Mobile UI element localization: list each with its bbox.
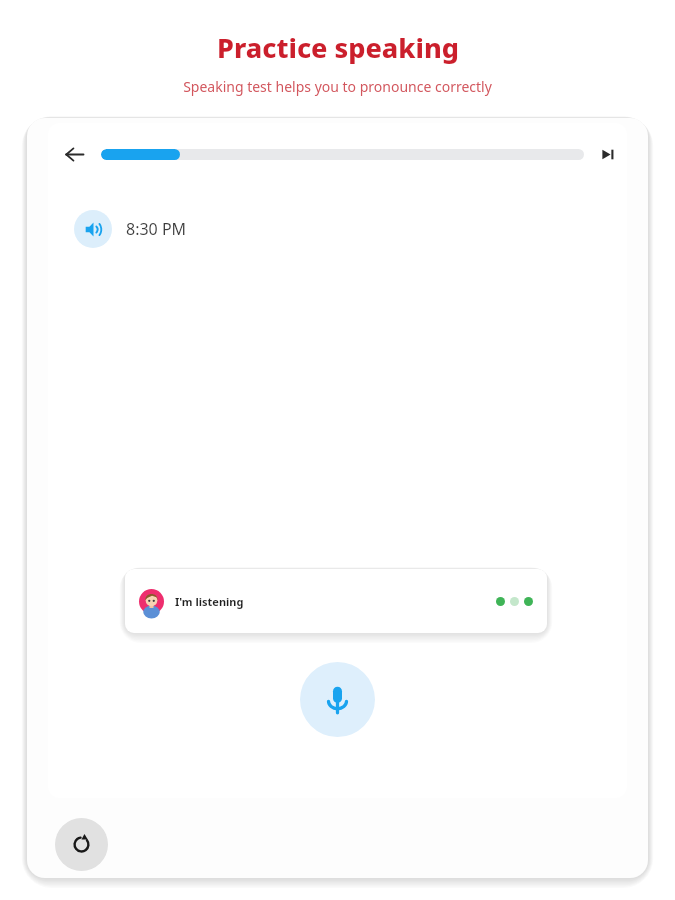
button[interactable]: I'm listening [125, 569, 547, 633]
staticText: I'm listening [175, 594, 244, 609]
button[interactable]: Restart [55, 818, 108, 871]
button[interactable]: Play audio [74, 210, 112, 248]
button[interactable]: Record with microphone [300, 662, 375, 737]
staticText: Speaking test helps you to pronounce cor… [183, 77, 492, 96]
button[interactable]: Back [54, 134, 94, 174]
staticText: 8:30 PM [126, 218, 187, 240]
button[interactable]: Skip [593, 139, 623, 169]
staticText: Practice speaking [217, 29, 459, 66]
